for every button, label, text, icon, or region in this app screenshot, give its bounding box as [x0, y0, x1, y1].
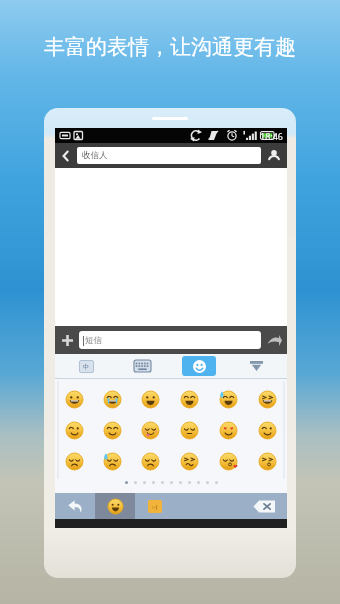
button[interactable]: Emoji 3 [131, 384, 170, 415]
button[interactable]: Contacts [261, 143, 287, 168]
button[interactable]: Back [55, 493, 95, 519]
button[interactable]: Emoji [182, 356, 216, 376]
button[interactable]: Emoji 8 [93, 415, 131, 446]
staticText: 收信人 [82, 150, 108, 161]
button[interactable]: Emoji 12 [248, 415, 287, 446]
button[interactable]: Emoji tab [95, 493, 135, 519]
staticText: 短信 [85, 335, 102, 346]
staticText: 中 [83, 363, 90, 371]
button[interactable]: Emoji 5 [209, 384, 248, 415]
button[interactable]: Send [261, 326, 287, 354]
button[interactable]: Emoji 1 [55, 384, 93, 415]
button[interactable]: Emoji 14 [93, 446, 131, 477]
button[interactable]: Emoji 6 [248, 384, 287, 415]
button[interactable]: Emoji 17 [209, 446, 248, 477]
button[interactable]: 收信人 [77, 147, 261, 164]
button[interactable]: Keyboard [127, 355, 157, 377]
button[interactable]: Back [55, 143, 77, 168]
button[interactable]: Emoji 2 [93, 384, 131, 415]
button[interactable]: Emoji 18 [248, 446, 287, 477]
button[interactable]: Backspace [241, 493, 287, 519]
button[interactable]: Text emoticons [135, 493, 175, 519]
staticText: 18:46 [260, 130, 284, 142]
button[interactable]: Collapse keyboard [241, 355, 271, 377]
button[interactable]: Emoji 9 [131, 415, 170, 446]
button[interactable]: Emoji 15 [131, 446, 170, 477]
staticText: :-) [152, 503, 158, 511]
button[interactable]: Add attachment [55, 326, 79, 354]
button[interactable]: Emoji 4 [170, 384, 209, 415]
staticText: 丰富的表情，让沟通更有趣 [44, 34, 296, 60]
button[interactable]: Emoji 16 [170, 446, 209, 477]
button[interactable]: Emoji 13 [55, 446, 93, 477]
button[interactable]: 短信 [79, 331, 261, 349]
button[interactable]: Emoji 11 [209, 415, 248, 446]
button[interactable]: Emoji 10 [170, 415, 209, 446]
button[interactable]: Emoji 7 [55, 415, 93, 446]
button[interactable]: Input method [71, 355, 101, 377]
